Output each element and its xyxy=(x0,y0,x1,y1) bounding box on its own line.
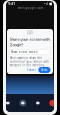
staticText: Meet wants to share the contents of your… xyxy=(9,56,49,67)
staticText: meet.google.com xyxy=(17,6,42,10)
staticText: ⌄ xyxy=(47,50,49,53)
button[interactable]: Microphone xyxy=(34,99,41,106)
staticText: 9:41 xyxy=(8,1,15,6)
button[interactable]: Camera xyxy=(19,99,26,106)
button[interactable]: Microphone xyxy=(4,99,11,106)
button[interactable]: Share entire screen xyxy=(9,49,50,55)
button[interactable]: Cancel xyxy=(26,68,37,72)
staticText: •ıl ◼ xyxy=(44,1,52,6)
staticText: Share entire screen xyxy=(11,50,38,54)
button[interactable]: Leave call xyxy=(49,100,56,106)
button[interactable]: Share xyxy=(38,67,50,73)
staticText: Cancel xyxy=(27,68,36,72)
staticText: Share xyxy=(41,68,48,72)
staticText: Share your screen with Google? xyxy=(9,37,49,47)
